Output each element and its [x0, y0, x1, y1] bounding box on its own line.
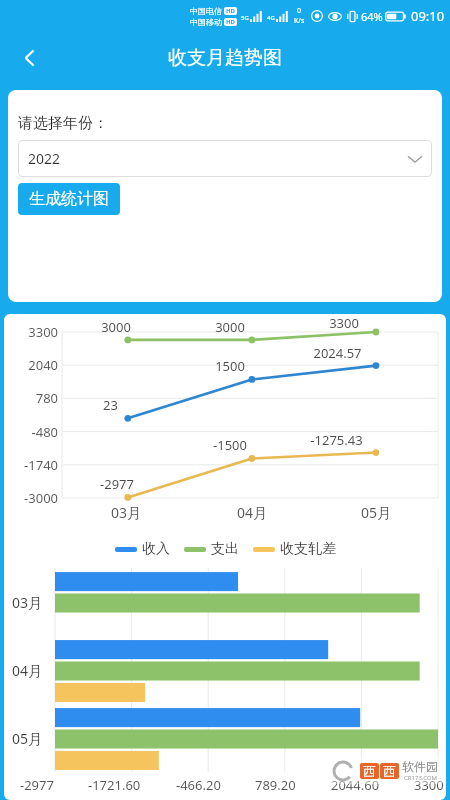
staticText: -2977 — [20, 776, 54, 794]
staticText: K/s — [294, 16, 305, 26]
staticText: 收入 — [142, 540, 170, 558]
staticText: 4G — [267, 14, 275, 22]
button[interactable]: 2022 — [18, 140, 432, 177]
staticText: 3300 — [4, 323, 58, 341]
button[interactable]: Back — [8, 36, 52, 80]
staticText: 789.20 — [255, 776, 296, 794]
staticText: -1740 — [4, 456, 58, 474]
staticText: 3000 — [101, 318, 131, 336]
staticText: 1500 — [215, 357, 245, 375]
staticText: HD — [226, 7, 235, 15]
staticText: -3000 — [4, 489, 58, 507]
staticText: 04月 — [12, 661, 43, 680]
staticText: 收支月趋势图 — [168, 46, 282, 70]
button[interactable]: 支出 — [184, 540, 239, 558]
staticText: 23 — [103, 396, 118, 414]
staticText: 2044.60 — [331, 776, 380, 794]
staticText: 中国电信 — [190, 6, 222, 16]
staticText: -1275.43 — [310, 431, 363, 449]
staticText: 请选择年份： — [18, 114, 108, 133]
staticText: 03月 — [12, 593, 43, 612]
staticText: HD — [226, 18, 235, 26]
staticText: 生成统计图 — [29, 189, 109, 209]
staticText: -1721.60 — [88, 776, 141, 794]
staticText: 中国移动 — [190, 17, 222, 27]
staticText: 收支轧差 — [280, 540, 336, 558]
staticText: 支出 — [211, 540, 239, 558]
staticText: 03月 — [111, 503, 142, 522]
staticText: 西 — [383, 763, 396, 779]
button[interactable]: 收支轧差 — [253, 540, 336, 558]
staticText: -466.20 — [176, 776, 221, 794]
button[interactable]: 生成统计图 — [18, 183, 120, 215]
staticText: 2040 — [4, 356, 58, 374]
staticText: 05月 — [361, 503, 392, 522]
staticText: 780 — [4, 389, 58, 407]
staticText: 3000 — [215, 318, 245, 336]
staticText: -480 — [4, 423, 58, 441]
staticText: -1500 — [213, 436, 247, 454]
staticText: 04月 — [237, 503, 268, 522]
staticText: CR173.COM — [404, 774, 437, 782]
staticText: 64% — [361, 9, 383, 24]
staticText: 2022 — [28, 149, 61, 168]
staticText: 05月 — [12, 729, 43, 748]
staticText: -2977 — [100, 475, 134, 493]
staticText: 2024.57 — [313, 344, 362, 362]
button[interactable]: 收入 — [115, 540, 170, 558]
staticText: 3300 — [329, 314, 359, 332]
staticText: 5G — [241, 14, 249, 22]
staticText: 0 — [297, 6, 302, 16]
staticText: 西 — [363, 763, 376, 779]
staticText: 3300 — [414, 776, 444, 794]
staticText: 软件园 — [402, 759, 438, 774]
staticText: 09:10 — [411, 7, 445, 25]
